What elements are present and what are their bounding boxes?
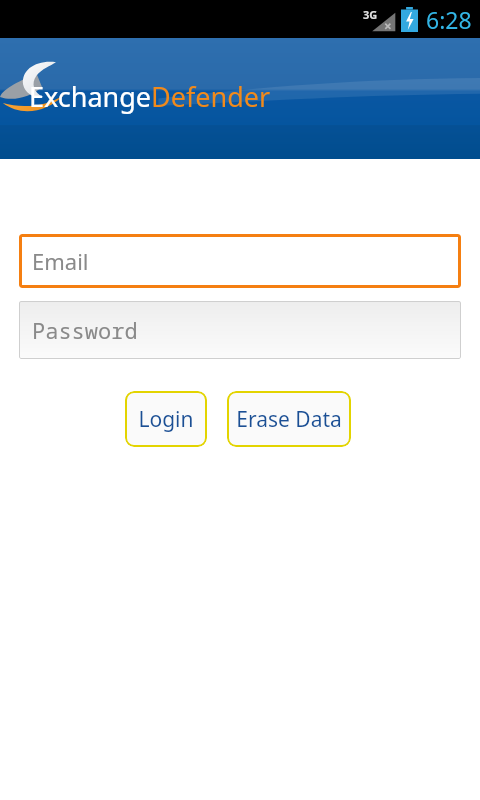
staticText: 3G (363, 7, 378, 22)
button[interactable]: Erase Data (227, 391, 351, 447)
button[interactable]: Email (19, 234, 461, 288)
button[interactable]: Password (19, 301, 461, 359)
staticText: Password (32, 315, 138, 345)
staticText: ExchangeDefender (29, 78, 271, 115)
staticText: Erase Data (236, 405, 342, 434)
staticText: 6:28 (426, 4, 472, 35)
button[interactable]: Login (125, 391, 207, 447)
staticText: Login (138, 405, 194, 434)
staticText: Email (32, 246, 89, 276)
